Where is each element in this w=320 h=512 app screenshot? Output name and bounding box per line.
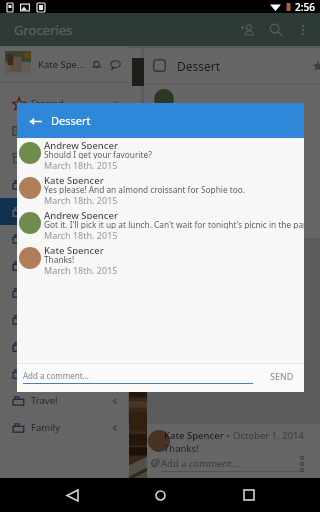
staticText: Lists (31, 124, 51, 137)
staticText: Thanks! (164, 442, 199, 455)
button[interactable]: Add person (234, 17, 260, 43)
staticText: Kate Spencer (44, 244, 104, 254)
button[interactable]: Kate Spe... (0, 46, 128, 82)
button[interactable]: Shopping (0, 198, 128, 225)
button[interactable]: Back (22, 108, 48, 134)
button[interactable]: Back (17, 103, 304, 138)
button[interactable]: Kate Spencer (17, 245, 304, 280)
staticText: Family (31, 421, 60, 434)
staticText: Recipes (31, 232, 66, 245)
button[interactable]: Recents (232, 478, 266, 512)
button[interactable]: Recipes (0, 225, 128, 252)
staticText: Yes please! And an almond croissant for … (44, 184, 246, 194)
staticText: 2:56 (295, 0, 315, 13)
button[interactable]: Groceries (0, 13, 320, 46)
staticText: Andrew Spencer (44, 139, 118, 149)
button[interactable]: Ideas (0, 360, 128, 387)
button[interactable]: Notifications (88, 56, 104, 72)
staticText: Starred (31, 97, 64, 110)
staticText: Dessert (177, 58, 221, 74)
button[interactable]: More options (290, 17, 316, 43)
staticText: Dessert (51, 113, 91, 128)
staticText: October 1, 2014 (233, 429, 304, 442)
button[interactable]: Archive (0, 144, 128, 171)
staticText: Should I get your favourite? (44, 149, 152, 159)
button[interactable]: Groceries (0, 279, 128, 306)
staticText: Home (31, 259, 59, 272)
button[interactable]: Chat (107, 56, 123, 72)
button[interactable]: Back (55, 478, 89, 512)
button[interactable]: Lists (0, 117, 128, 144)
staticText: March 18th, 2015 (44, 194, 118, 204)
staticText: Travel (31, 394, 58, 407)
staticText: March 18th, 2015 (44, 159, 118, 169)
staticText: Ideas (31, 367, 56, 380)
staticText: Work (31, 178, 55, 191)
staticText: • (224, 429, 233, 442)
staticText: Kate Spencer (164, 429, 224, 442)
staticText: SEND (270, 370, 294, 382)
button[interactable]: Search (263, 17, 289, 43)
button[interactable]: Andrew Spencer (17, 140, 304, 175)
staticText: Andrew Spencer (44, 209, 118, 219)
staticText: Groceries (14, 21, 73, 39)
staticText: March 18th, 2015 (44, 229, 118, 239)
button[interactable]: Starred (0, 90, 128, 117)
button[interactable]: Travel (0, 387, 128, 414)
button[interactable]: SEND (263, 364, 301, 388)
staticText: Got it. I'll pick it up at lunch. Can't … (44, 219, 304, 229)
staticText: Add a comment... (23, 370, 90, 381)
staticText: Archive (31, 151, 64, 164)
button[interactable]: Home (0, 252, 128, 279)
button[interactable]: Work (0, 171, 128, 198)
button[interactable]: Home (143, 478, 177, 512)
button[interactable]: Kate Spencer (17, 175, 304, 210)
button[interactable]: Check (144, 48, 320, 83)
button[interactable]: Check (153, 59, 166, 72)
staticText: Add a comment... (161, 457, 240, 470)
button[interactable]: Family (0, 414, 128, 441)
button[interactable]: Star (309, 57, 320, 75)
staticText: Shopping (31, 205, 74, 218)
staticText: Kate Spe... (38, 58, 85, 71)
staticText: Kate Spencer (44, 174, 104, 184)
button[interactable]: Friends (0, 333, 128, 360)
staticText: Thanks! (44, 254, 75, 264)
button[interactable]: Andrew Spencer (17, 210, 304, 245)
staticText: March 18th, 2015 (44, 264, 118, 274)
button[interactable]: Projects (0, 306, 128, 333)
